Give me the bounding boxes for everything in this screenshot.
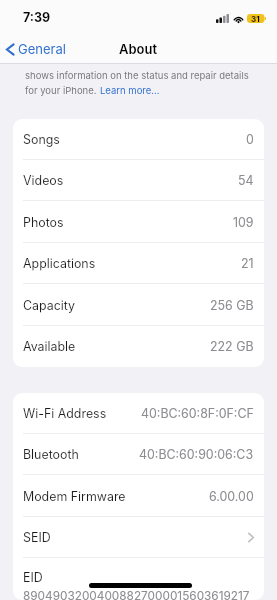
staticText: 40:BC:60:8F:0F:CF [141, 406, 254, 421]
button[interactable]: Wi-Fi Address [13, 393, 264, 434]
staticText: 222 GB [210, 339, 254, 354]
staticText: 109 [233, 215, 254, 230]
staticText: 21 [241, 256, 254, 271]
button[interactable]: Photos [13, 202, 264, 243]
button[interactable]: General [0, 37, 74, 61]
staticText: 40:BC:60:90:06:C3 [139, 447, 254, 462]
staticText: Photos [23, 215, 64, 230]
staticText: Bluetooth [23, 447, 79, 462]
staticText: Wi-Fi Address [23, 406, 107, 421]
staticText: Capacity [23, 298, 76, 313]
button[interactable]: Learn more... [100, 85, 160, 96]
button[interactable]: Capacity [13, 285, 264, 326]
staticText: Available [23, 339, 76, 354]
button[interactable]: Songs [13, 119, 264, 160]
staticText: shows information on the status and repa… [25, 70, 249, 81]
staticText: General [18, 41, 66, 57]
staticText: 31 [251, 14, 260, 23]
staticText: Videos [23, 173, 64, 188]
staticText: 54 [238, 173, 254, 188]
staticText: 256 GB [210, 298, 254, 313]
button[interactable]: Videos [13, 160, 264, 201]
button[interactable]: Bluetooth [13, 434, 264, 475]
staticText: Applications [23, 256, 96, 271]
staticText: Modem Firmware [23, 489, 126, 504]
button[interactable]: Modem Firmware [13, 476, 264, 517]
button[interactable]: EID [13, 559, 264, 600]
staticText: 7:39 [23, 10, 51, 25]
staticText: SEID [23, 530, 51, 545]
button[interactable]: Applications [13, 243, 264, 284]
staticText: 0 [246, 132, 254, 147]
other: SEID details [248, 532, 254, 543]
staticText: 6.00.00 [209, 489, 254, 504]
staticText: About [119, 41, 158, 57]
staticText: for your iPhone. [25, 85, 100, 96]
staticText: EID [23, 570, 43, 585]
staticText: Songs [23, 132, 60, 147]
button[interactable]: Available [13, 326, 264, 367]
staticText: 89049032004008827000015603619217 [23, 589, 250, 600]
button[interactable]: SEID [13, 517, 264, 558]
